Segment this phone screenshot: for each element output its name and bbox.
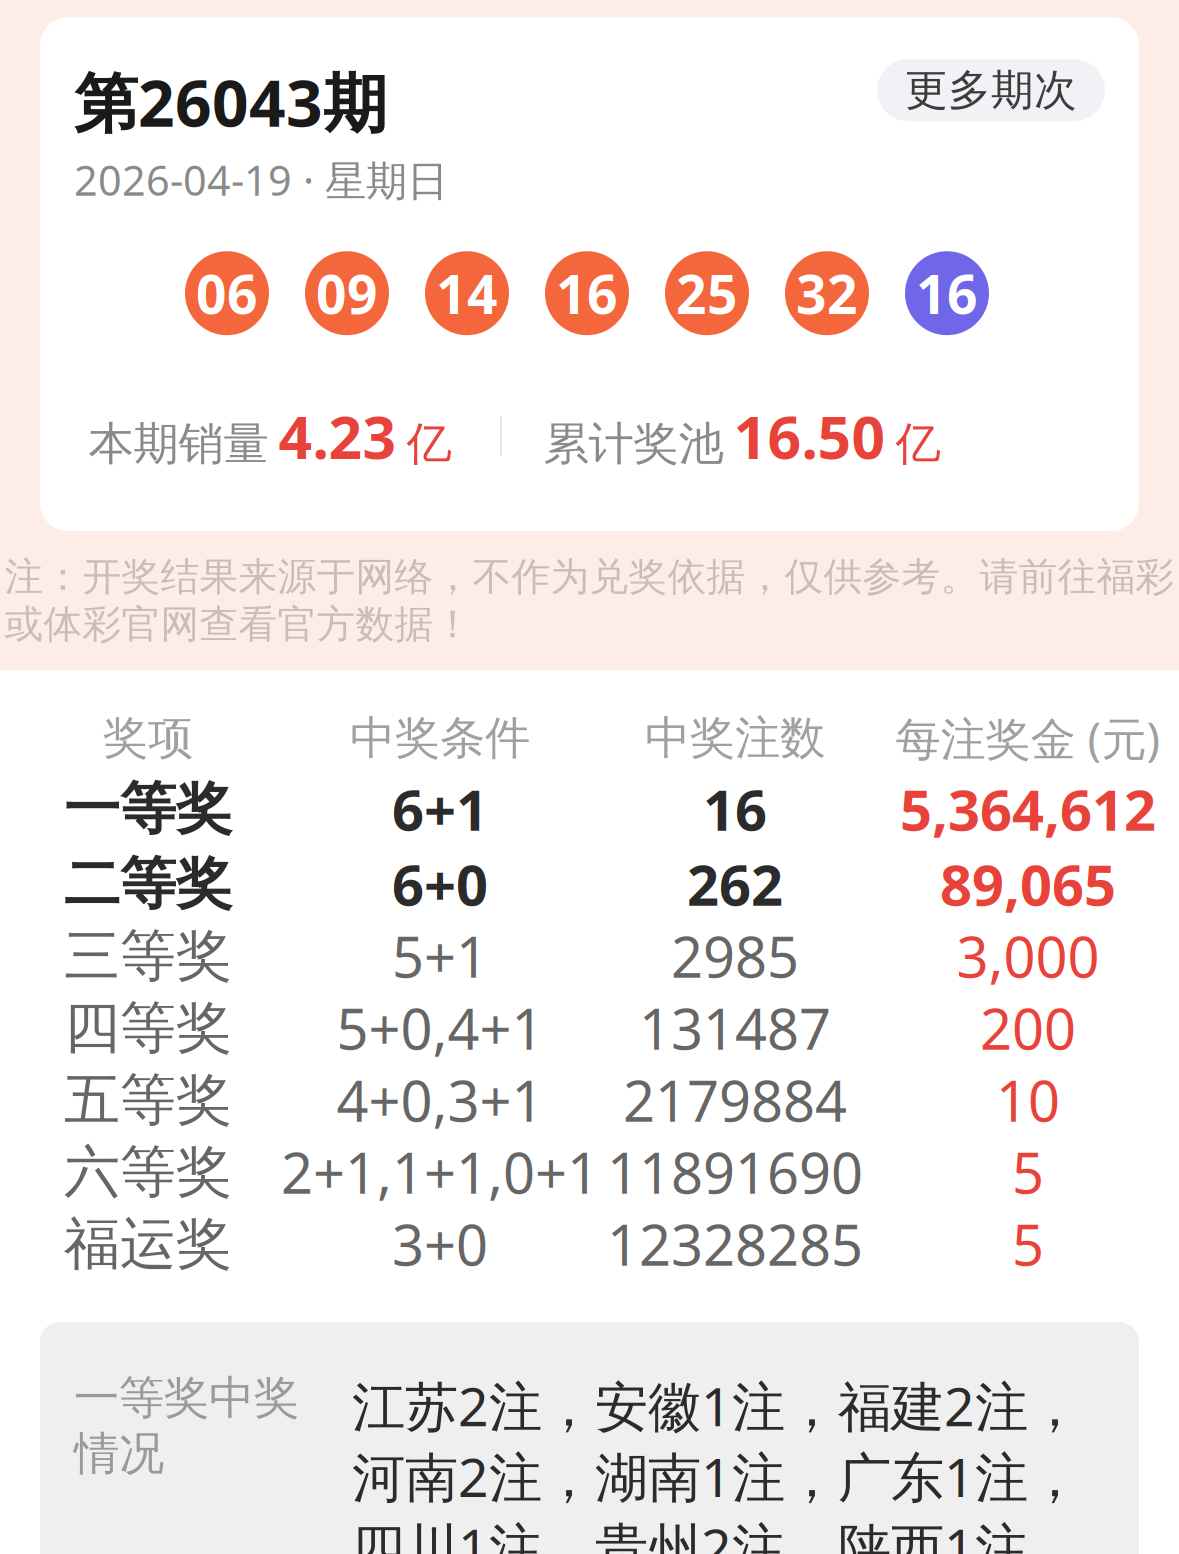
staticText: 第26043期 [74,59,387,144]
staticText: 注：开奖结果来源于网络，不作为兑奖依据，仅供参考。请前往福彩或体彩官网查看官方数… [4,553,1174,648]
staticText: 奖项 [103,710,193,766]
staticText: 16 [703,772,767,846]
staticText: 262 [687,847,783,921]
staticText: 11891690 [607,1135,863,1209]
staticText: 12328285 [607,1207,863,1281]
staticText: 三等奖 [64,922,232,990]
staticText: 2026-04-19 · 星期日 [74,152,448,207]
staticText: 本期销量 [88,416,268,472]
staticText: 06 [196,258,258,329]
staticText: 4+0,3+1 [336,1063,543,1137]
staticText: 亿 [406,416,451,472]
staticText: 131487 [639,991,831,1065]
staticText: 二等奖 [64,850,232,918]
staticText: 四等奖 [64,994,232,1062]
staticText: 六等奖 [64,1138,232,1206]
staticText: 五等奖 [64,1066,232,1134]
staticText: 亿 [895,416,940,472]
staticText: 每注奖金 (元) [895,708,1160,768]
staticText: 5,364,612 [900,772,1156,846]
staticText: 14 [436,258,498,329]
staticText: 6+1 [392,772,488,846]
staticText: 5+0,4+1 [336,991,543,1065]
staticText: 中奖注数 [645,710,825,766]
staticText: 中奖条件 [350,710,530,766]
staticText: 200 [980,991,1076,1065]
staticText: 5 [1012,1207,1044,1281]
staticText: 16.50 [733,397,885,475]
staticText: 福运奖 [64,1210,232,1278]
staticText: 3+0 [392,1207,488,1281]
button[interactable]: 更多期次 [877,59,1105,121]
staticText: 10 [996,1063,1060,1137]
staticText: 4.23 [278,397,396,475]
staticText: 16 [556,258,618,329]
staticText: 2985 [671,919,799,993]
staticText: 累计奖池 [543,416,723,472]
staticText: 5+1 [392,919,488,993]
staticText: 3,000 [956,919,1099,993]
staticText: 江苏2注，安徽1注，福建2注，河南2注，湖南1注，广东1注，四川1注，贵州2注，… [352,1370,1081,1554]
staticText: 32 [796,258,858,329]
staticText: 6+0 [392,847,488,921]
staticText: 一等奖中奖情况 [74,1370,299,1481]
staticText: 2179884 [623,1063,847,1137]
staticText: 5 [1012,1135,1044,1209]
staticText: 09 [316,258,378,329]
staticText: 89,065 [940,847,1116,921]
staticText: 16 [916,258,978,329]
staticText: 一等奖 [64,775,232,843]
staticText: 2+1,1+1,0+1 [281,1135,599,1209]
staticText: 更多期次 [905,64,1077,116]
staticText: 25 [676,258,738,329]
